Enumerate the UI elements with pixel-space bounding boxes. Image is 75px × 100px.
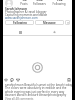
- button[interactable]: 162: [52, 0, 66, 6]
- staticText: View all 48 comments: [5, 97, 34, 100]
- staticText: www.sarahjohnson.com: [5, 16, 38, 20]
- button[interactable]: Like: [4, 78, 8, 82]
- button[interactable]: 54: [20, 0, 28, 6]
- staticText: Posts: [20, 2, 28, 6]
- staticText: 834: [36, 0, 43, 2]
- staticText: Sarah Johnson: [5, 7, 28, 11]
- button[interactable]: Following: [5, 20, 34, 25]
- button[interactable]: Tagged posts: [37, 30, 72, 35]
- staticText: The colors were absolutely incredible an…: [5, 86, 67, 90]
- staticText: sarahjohnson Beautiful sunset at the bea…: [5, 83, 73, 87]
- staticText: whole evening was just perfect in every …: [5, 90, 65, 94]
- staticText: #sunset #beach #nature #travelphotograph…: [5, 93, 67, 97]
- button[interactable]: More options: [65, 20, 70, 25]
- button[interactable]: Save: [67, 78, 71, 82]
- button[interactable]: Comment: [10, 78, 14, 82]
- staticText: 162: [56, 0, 63, 2]
- staticText: Followers: [33, 2, 46, 6]
- staticText: Message: [43, 21, 56, 25]
- button[interactable]: Share: [16, 78, 20, 82]
- staticText: Photographer & travel blogger: [5, 10, 47, 14]
- button[interactable]: Profile photo: [5, 0, 13, 7]
- staticText: 54: [22, 0, 27, 2]
- button[interactable]: 834: [33, 0, 46, 6]
- button[interactable]: Message: [35, 20, 64, 25]
- button[interactable]: Posts grid: [3, 30, 37, 35]
- staticText: Capturing moments worldwide: [5, 13, 48, 17]
- staticText: Following: [52, 2, 66, 6]
- staticText: Following: [13, 21, 27, 25]
